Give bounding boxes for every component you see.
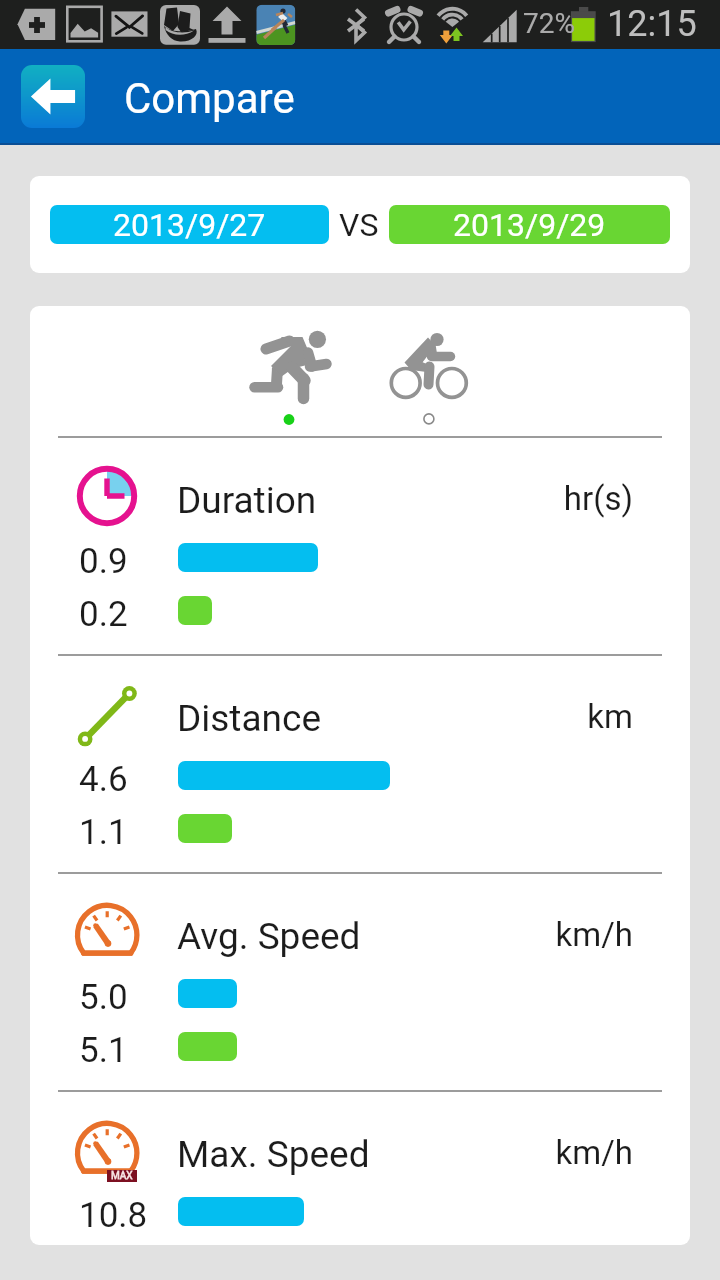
staticText: km/h (403, 915, 633, 954)
staticText: 5.1 (79, 1030, 128, 1071)
staticText: 1.1 (79, 812, 128, 853)
button[interactable]: 2013/9/27 (50, 205, 329, 244)
staticText: hr(s) (403, 479, 633, 518)
staticText: km (403, 697, 633, 736)
staticText: 10.8 (79, 1195, 148, 1236)
button[interactable]: Back (21, 65, 85, 128)
button[interactable]: Duration (30, 438, 690, 654)
staticText: km/h (403, 1133, 633, 1172)
staticText: Duration (177, 479, 317, 522)
staticText: 0.9 (79, 541, 128, 582)
staticText: Avg. Speed (177, 915, 361, 958)
staticText: 72% (523, 7, 575, 40)
staticText: MAX (111, 1170, 133, 1182)
staticText: Compare (124, 74, 295, 123)
button[interactable]: Running (229, 306, 349, 436)
staticText: 0.2 (79, 594, 128, 635)
staticText: 4.6 (79, 759, 128, 800)
staticText: 12:15 (607, 3, 697, 45)
button[interactable]: MAX (30, 1092, 690, 1245)
button[interactable]: Avg. Speed (30, 874, 690, 1090)
staticText: 5.0 (79, 977, 128, 1018)
staticText: Distance (177, 697, 322, 740)
button[interactable]: Distance (30, 656, 690, 872)
staticText: VS (339, 206, 379, 244)
button[interactable]: 2013/9/29 (389, 205, 670, 244)
staticText: Max. Speed (177, 1133, 370, 1176)
staticText: 2013/9/29 (453, 206, 606, 244)
button[interactable]: Cycling (369, 306, 489, 436)
staticText: 2013/9/27 (113, 206, 266, 244)
